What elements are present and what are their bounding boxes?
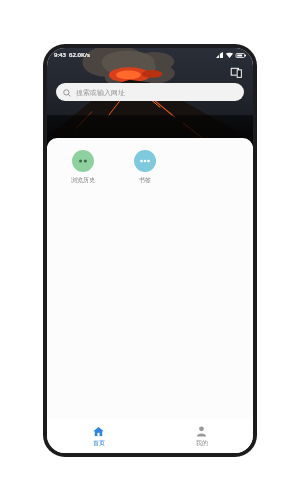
staticText: 我的 bbox=[196, 439, 208, 447]
staticText: 浏览历史 bbox=[71, 176, 95, 184]
staticText: 9:43 62.0K/s bbox=[54, 51, 90, 59]
staticText: 书签 bbox=[139, 176, 151, 184]
button[interactable]: 搜索或输入网址 bbox=[56, 83, 244, 101]
button[interactable]: 首页 bbox=[47, 419, 150, 453]
button[interactable]: History bbox=[63, 148, 103, 186]
staticText: 首页 bbox=[93, 439, 105, 447]
button[interactable]: 我的 bbox=[150, 419, 253, 453]
button[interactable]: Tabs bbox=[228, 64, 244, 80]
staticText: 搜索或输入网址 bbox=[76, 88, 125, 97]
button[interactable]: Bookmarks bbox=[125, 148, 165, 186]
